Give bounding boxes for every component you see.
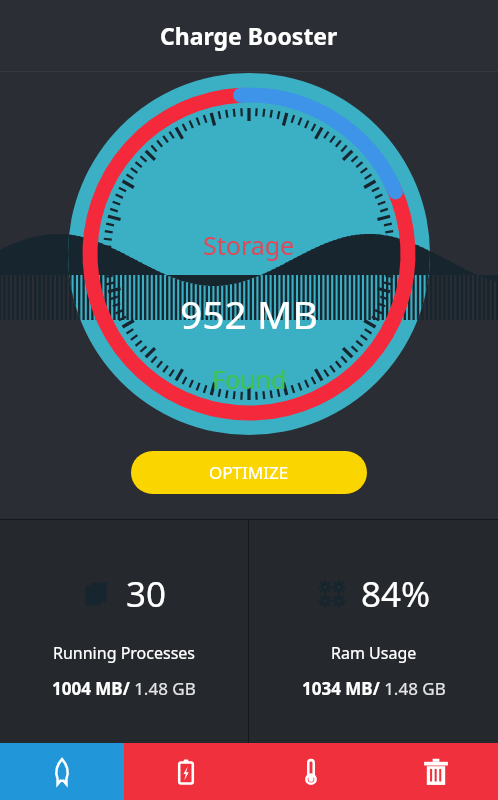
button[interactable]: Junk cleaner [373,743,498,800]
staticText: Ram Usage [331,642,417,664]
staticText: OPTIMIZE [209,461,289,484]
button[interactable]: Boost [0,743,124,800]
button[interactable]: CPU cooler [248,743,373,800]
staticText: 1004 MB/ 1.48 GB [52,677,196,700]
staticText: 1034 MB/ 1.48 GB [302,677,446,700]
button[interactable]: 30 [0,520,248,743]
staticText: Found [212,362,287,396]
staticText: 84% [361,570,431,618]
staticText: Running Processes [53,642,196,664]
staticText: Charge Booster [160,20,338,51]
button[interactable]: 84% [249,520,498,743]
staticText: 30 [126,570,167,618]
button[interactable]: Battery saver [124,743,248,800]
button[interactable]: OPTIMIZE [131,451,367,494]
staticText: 952 MB [180,287,318,340]
staticText: Storage [203,228,295,262]
